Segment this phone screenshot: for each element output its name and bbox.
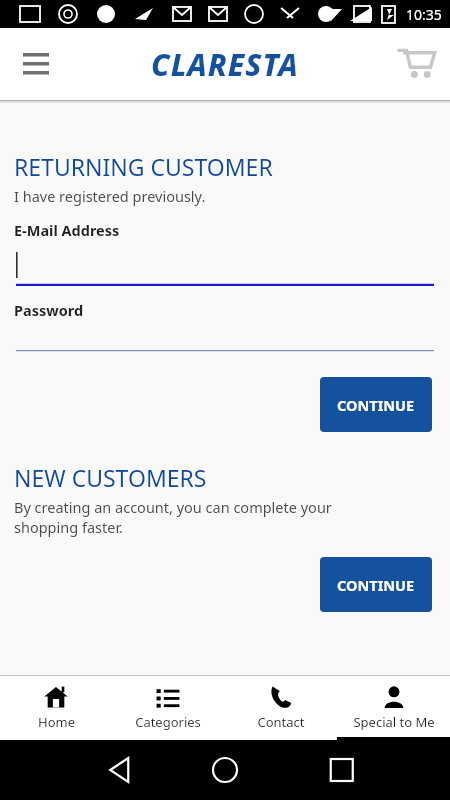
button[interactable]: CONTINUE xyxy=(320,377,432,432)
staticText: 10:35 xyxy=(406,5,442,24)
button[interactable]: Categories xyxy=(112,677,224,737)
button[interactable]: Contact xyxy=(224,677,337,737)
staticText: CONTINUE xyxy=(337,575,415,595)
button[interactable]: Home xyxy=(0,677,112,737)
button[interactable]: Special to Me xyxy=(337,677,450,737)
staticText: NEW CUSTOMERS xyxy=(14,462,207,493)
button[interactable]: CONTINUE xyxy=(320,557,432,612)
staticText: I have registered previously. xyxy=(14,186,206,206)
staticText: CLARESTA xyxy=(151,44,299,85)
button[interactable]: Menu xyxy=(12,40,60,88)
staticText: E-Mail Address xyxy=(14,220,120,240)
button[interactable] xyxy=(0,252,450,286)
staticText: Password xyxy=(14,300,84,320)
staticText: Special to Me xyxy=(353,713,435,731)
staticText: Home xyxy=(38,713,75,731)
staticText: CONTINUE xyxy=(337,395,415,415)
button[interactable]: Cart xyxy=(390,38,442,90)
staticText: Contact xyxy=(257,713,305,731)
staticText: By creating an account, you can complete… xyxy=(14,497,380,537)
staticText: RETURNING CUSTOMER xyxy=(14,151,273,182)
staticText: Categories xyxy=(135,713,201,731)
